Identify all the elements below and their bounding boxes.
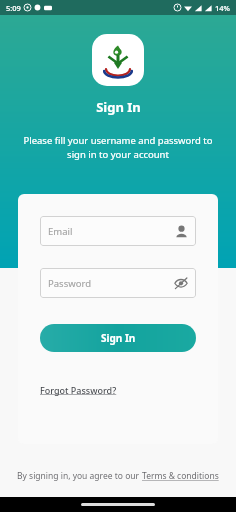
staticText: Please fill your username and password t… — [18, 134, 218, 161]
staticText: Password — [48, 277, 91, 290]
button[interactable]: Terms & conditions — [142, 470, 219, 482]
staticText: Sign In — [96, 98, 141, 116]
staticText: 14% — [215, 3, 230, 13]
other: Username — [175, 225, 188, 238]
staticText: 5:09 — [6, 3, 21, 13]
staticText: Sign In — [101, 331, 136, 345]
button[interactable]: Password — [40, 268, 196, 298]
other: Toggle password visibility — [174, 276, 188, 290]
button[interactable]: Sign In — [40, 324, 196, 352]
staticText: Forgot Password? — [40, 384, 117, 396]
staticText: By signing in, you agree to our — [17, 470, 142, 482]
button[interactable]: Forgot Password? — [40, 382, 117, 398]
staticText: Email — [48, 225, 73, 238]
staticText: Terms & conditions — [142, 470, 219, 482]
button[interactable]: Email — [40, 216, 196, 246]
